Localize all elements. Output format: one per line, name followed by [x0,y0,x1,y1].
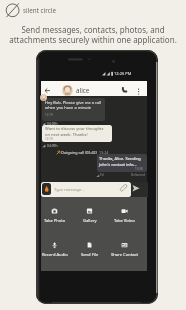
staticText: on next week. Thanks! [45,132,88,138]
button[interactable] [42,84,53,95]
staticText: Want to discuss your thoughts [45,126,104,132]
staticText: Record Audio [42,252,68,258]
staticText: Gallery [83,218,97,224]
staticText: 13:30 [135,167,143,171]
staticText: Delivered [131,173,145,177]
button[interactable]: Record Audio [37,242,72,258]
button[interactable]: Gallery [72,208,107,224]
staticText: Send messages, contacts, photos, and [21,24,165,35]
staticText: 12:19 [45,113,53,117]
staticText: Hey Bob. Please give me a call [45,100,102,105]
staticText: silent circle [23,6,56,15]
staticText: 04:09h [47,121,58,125]
staticText: attachments securely within one applicat… [9,34,177,45]
button[interactable]: Send File [72,242,107,258]
staticText: 04:09h [47,143,58,147]
staticText: when you have a minute [45,105,92,110]
button[interactable] [131,183,142,193]
button[interactable] [42,183,51,195]
staticText: Take Photo [44,218,66,224]
staticText: Thanks, Alice. Sending [99,156,141,161]
button[interactable] [119,84,130,95]
button[interactable] [41,182,131,197]
button[interactable]: Take Photo [37,208,72,224]
staticText: Outgoing call (03:42) [61,150,97,155]
button[interactable] [118,182,129,194]
staticText: Take Video [114,218,135,224]
button[interactable]: Share Contact [107,242,142,258]
staticText: Send File [81,252,99,258]
staticText: Type message... [54,187,85,193]
button[interactable] [62,85,73,96]
staticText: Tel [100,173,105,177]
button[interactable] [135,84,143,95]
staticText: John's contact info... [99,162,137,167]
staticText: 12:19 [45,137,53,141]
button[interactable]: Take Video [107,208,142,224]
staticText: 12:26 PM [114,71,132,76]
staticText: 13:24 [99,150,109,155]
staticText: Share Contact [111,252,138,258]
staticText: alice [76,86,90,95]
